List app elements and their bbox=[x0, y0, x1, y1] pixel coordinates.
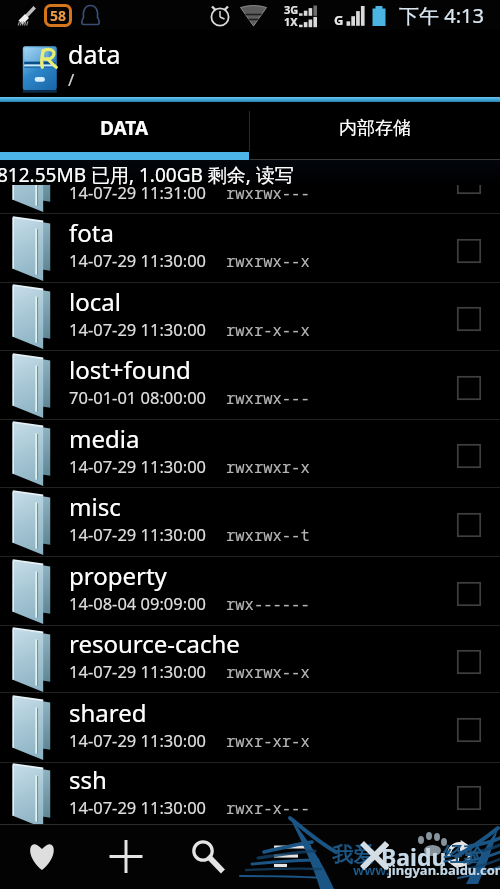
staticText: 14-07-29 11:31:00 bbox=[69, 181, 207, 203]
staticText: rwxrwx--x bbox=[226, 250, 310, 271]
staticText: shared bbox=[69, 696, 147, 729]
staticText: rwxrwx--- bbox=[226, 387, 310, 408]
staticText: 70-01-01 08:00:00 bbox=[69, 386, 207, 408]
staticText: data bbox=[68, 37, 121, 71]
staticText: 内部存储 bbox=[339, 117, 411, 140]
staticText: 58 bbox=[50, 6, 67, 25]
staticText: 3G bbox=[284, 2, 299, 17]
button[interactable]: 内部存储 bbox=[250, 102, 500, 160]
staticText: rwxrwx--x bbox=[226, 661, 310, 682]
button[interactable]: lost+found bbox=[0, 351, 500, 420]
staticText: rwxrwx--- bbox=[226, 182, 310, 203]
staticText: rwxr-x--x bbox=[226, 319, 310, 340]
button[interactable]: property bbox=[0, 557, 500, 626]
staticText: 14-07-29 11:30:00 bbox=[69, 660, 207, 682]
staticText: 14-07-29 11:30:00 bbox=[69, 318, 207, 340]
staticText: DATA bbox=[100, 115, 149, 141]
button[interactable]: Refresh bbox=[417, 825, 500, 889]
staticText: misc bbox=[69, 490, 121, 523]
staticText: rwxr-xr-x bbox=[226, 730, 310, 751]
staticText: jingyan.baidu.com bbox=[388, 861, 500, 879]
staticText: 14-07-29 11:30:00 bbox=[69, 455, 207, 477]
staticText: lost+found bbox=[69, 353, 191, 386]
staticText: resource-cache bbox=[69, 627, 240, 660]
staticText: local bbox=[69, 285, 121, 318]
staticText: rwx------ bbox=[226, 593, 310, 614]
button[interactable]: resource-cache bbox=[0, 626, 500, 693]
button[interactable]: Close bbox=[334, 825, 417, 889]
staticText: 812.55MB 已用, 1.00GB 剩余, 读写 bbox=[0, 162, 294, 188]
staticText: property bbox=[69, 559, 167, 592]
staticText: G bbox=[334, 11, 344, 29]
staticText: 我爱 bbox=[332, 842, 374, 868]
staticText: dalvik-cache bbox=[69, 148, 208, 181]
button[interactable]: fota bbox=[0, 214, 500, 283]
staticText: / bbox=[68, 68, 75, 91]
staticText: 14-08-04 09:09:00 bbox=[69, 592, 207, 614]
button[interactable]: DATA bbox=[0, 102, 249, 160]
button[interactable]: ssh bbox=[0, 763, 500, 828]
staticText: ssh bbox=[69, 763, 107, 796]
staticText: Baidu bbox=[381, 841, 447, 872]
button[interactable]: Add bbox=[84, 825, 168, 889]
button[interactable]: shared bbox=[0, 693, 500, 763]
staticText: 14-07-29 11:30:00 bbox=[69, 523, 207, 545]
button[interactable]: misc bbox=[0, 488, 500, 557]
staticText: 经验 bbox=[443, 842, 485, 868]
staticText: fota bbox=[69, 216, 114, 249]
staticText: media bbox=[69, 422, 140, 455]
staticText: 下午 4:13 bbox=[399, 2, 484, 29]
staticText: 1X bbox=[284, 14, 298, 29]
button[interactable]: local bbox=[0, 283, 500, 351]
staticText: rwxr-x--- bbox=[226, 797, 310, 818]
staticText: 14-07-29 11:30:00 bbox=[69, 796, 207, 818]
staticText: rwxrwx--t bbox=[226, 524, 310, 545]
staticText: www. bbox=[353, 861, 390, 879]
button[interactable]: Sort bbox=[251, 825, 334, 889]
button[interactable]: media bbox=[0, 420, 500, 488]
button[interactable]: Favorites bbox=[0, 825, 84, 889]
button[interactable]: dalvik-cache bbox=[0, 146, 500, 214]
staticText: 14-07-29 11:30:00 bbox=[69, 729, 207, 751]
staticText: 14-07-29 11:30:00 bbox=[69, 249, 207, 271]
button[interactable]: Search bbox=[168, 825, 251, 889]
staticText: rwxrwxr-x bbox=[226, 456, 310, 477]
